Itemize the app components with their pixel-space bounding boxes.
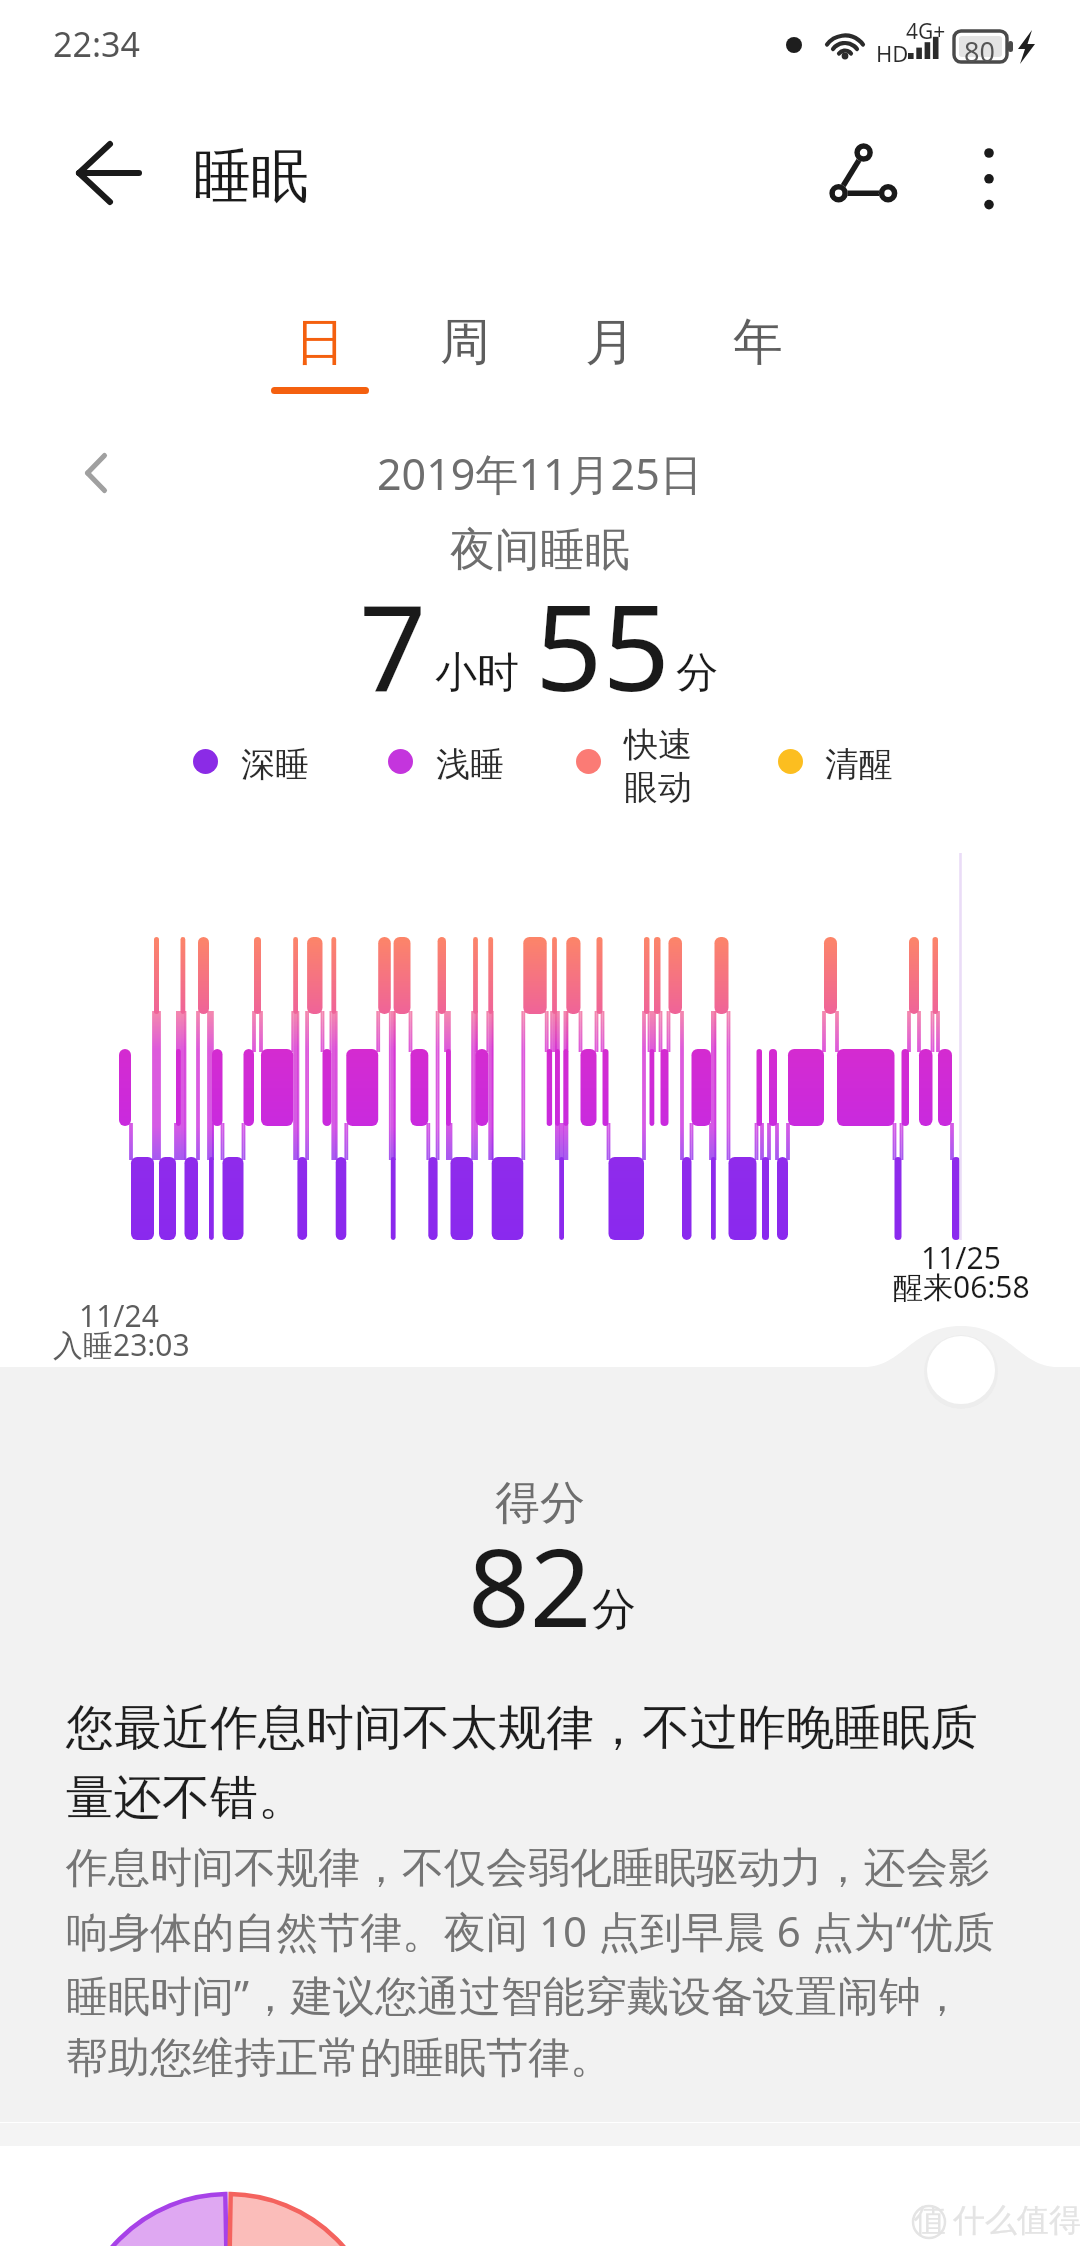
staticText: 11/24 xyxy=(79,1295,159,1336)
staticText: 7 xyxy=(359,565,427,726)
staticText: 11/25 xyxy=(921,1237,1001,1278)
staticText: 4G+ xyxy=(906,17,946,46)
staticText: 月 xyxy=(585,311,635,374)
staticText: 快速 xyxy=(624,723,692,766)
staticText: 分 xyxy=(592,1582,636,1637)
staticText: 小时 xyxy=(435,647,519,700)
staticText: 醒来06:58 xyxy=(893,1266,1030,1307)
staticText: 55 xyxy=(535,565,670,726)
button[interactable]: More options xyxy=(939,129,1039,229)
button[interactable]: 年 xyxy=(702,305,814,407)
staticText: 日 xyxy=(295,311,345,374)
button[interactable]: Back xyxy=(60,126,156,222)
staticText: 什么值得买 xyxy=(953,2200,1080,2240)
staticText: 2019年11月25日 xyxy=(377,444,703,503)
staticText: 清醒 xyxy=(825,743,893,786)
staticText: 年 xyxy=(733,311,783,374)
staticText: 作息时间不规律，不仅会弱化睡眠驱动力，还会影 响身体的自然节律。夜间 10 点到… xyxy=(66,1842,995,2085)
staticText: 夜间睡眠 xyxy=(450,522,630,579)
staticText: 值 xyxy=(914,2200,946,2240)
staticText: 分 xyxy=(676,647,718,700)
staticText: 您最近作息时间不太规律，不过昨晚睡眠质 量还不错。 xyxy=(66,1698,978,1828)
staticText: 睡眠 xyxy=(193,140,309,213)
staticText: 浅睡 xyxy=(436,743,504,786)
staticText: 得分 xyxy=(495,1475,585,1532)
staticText: 周 xyxy=(440,311,490,374)
staticText: HD xyxy=(876,38,909,68)
staticText: 82 xyxy=(468,1512,592,1659)
staticText: 22:34 xyxy=(53,21,140,67)
button[interactable]: 日 xyxy=(264,305,376,407)
button[interactable]: 周 xyxy=(409,305,521,407)
button[interactable]: Share xyxy=(812,122,912,222)
staticText: 入睡23:03 xyxy=(53,1324,190,1365)
staticText: 深睡 xyxy=(241,743,309,786)
button[interactable]: Previous day xyxy=(54,431,138,515)
staticText: 80 xyxy=(964,33,995,70)
staticText: 眼动 xyxy=(624,766,692,809)
button[interactable]: 月 xyxy=(554,305,666,407)
